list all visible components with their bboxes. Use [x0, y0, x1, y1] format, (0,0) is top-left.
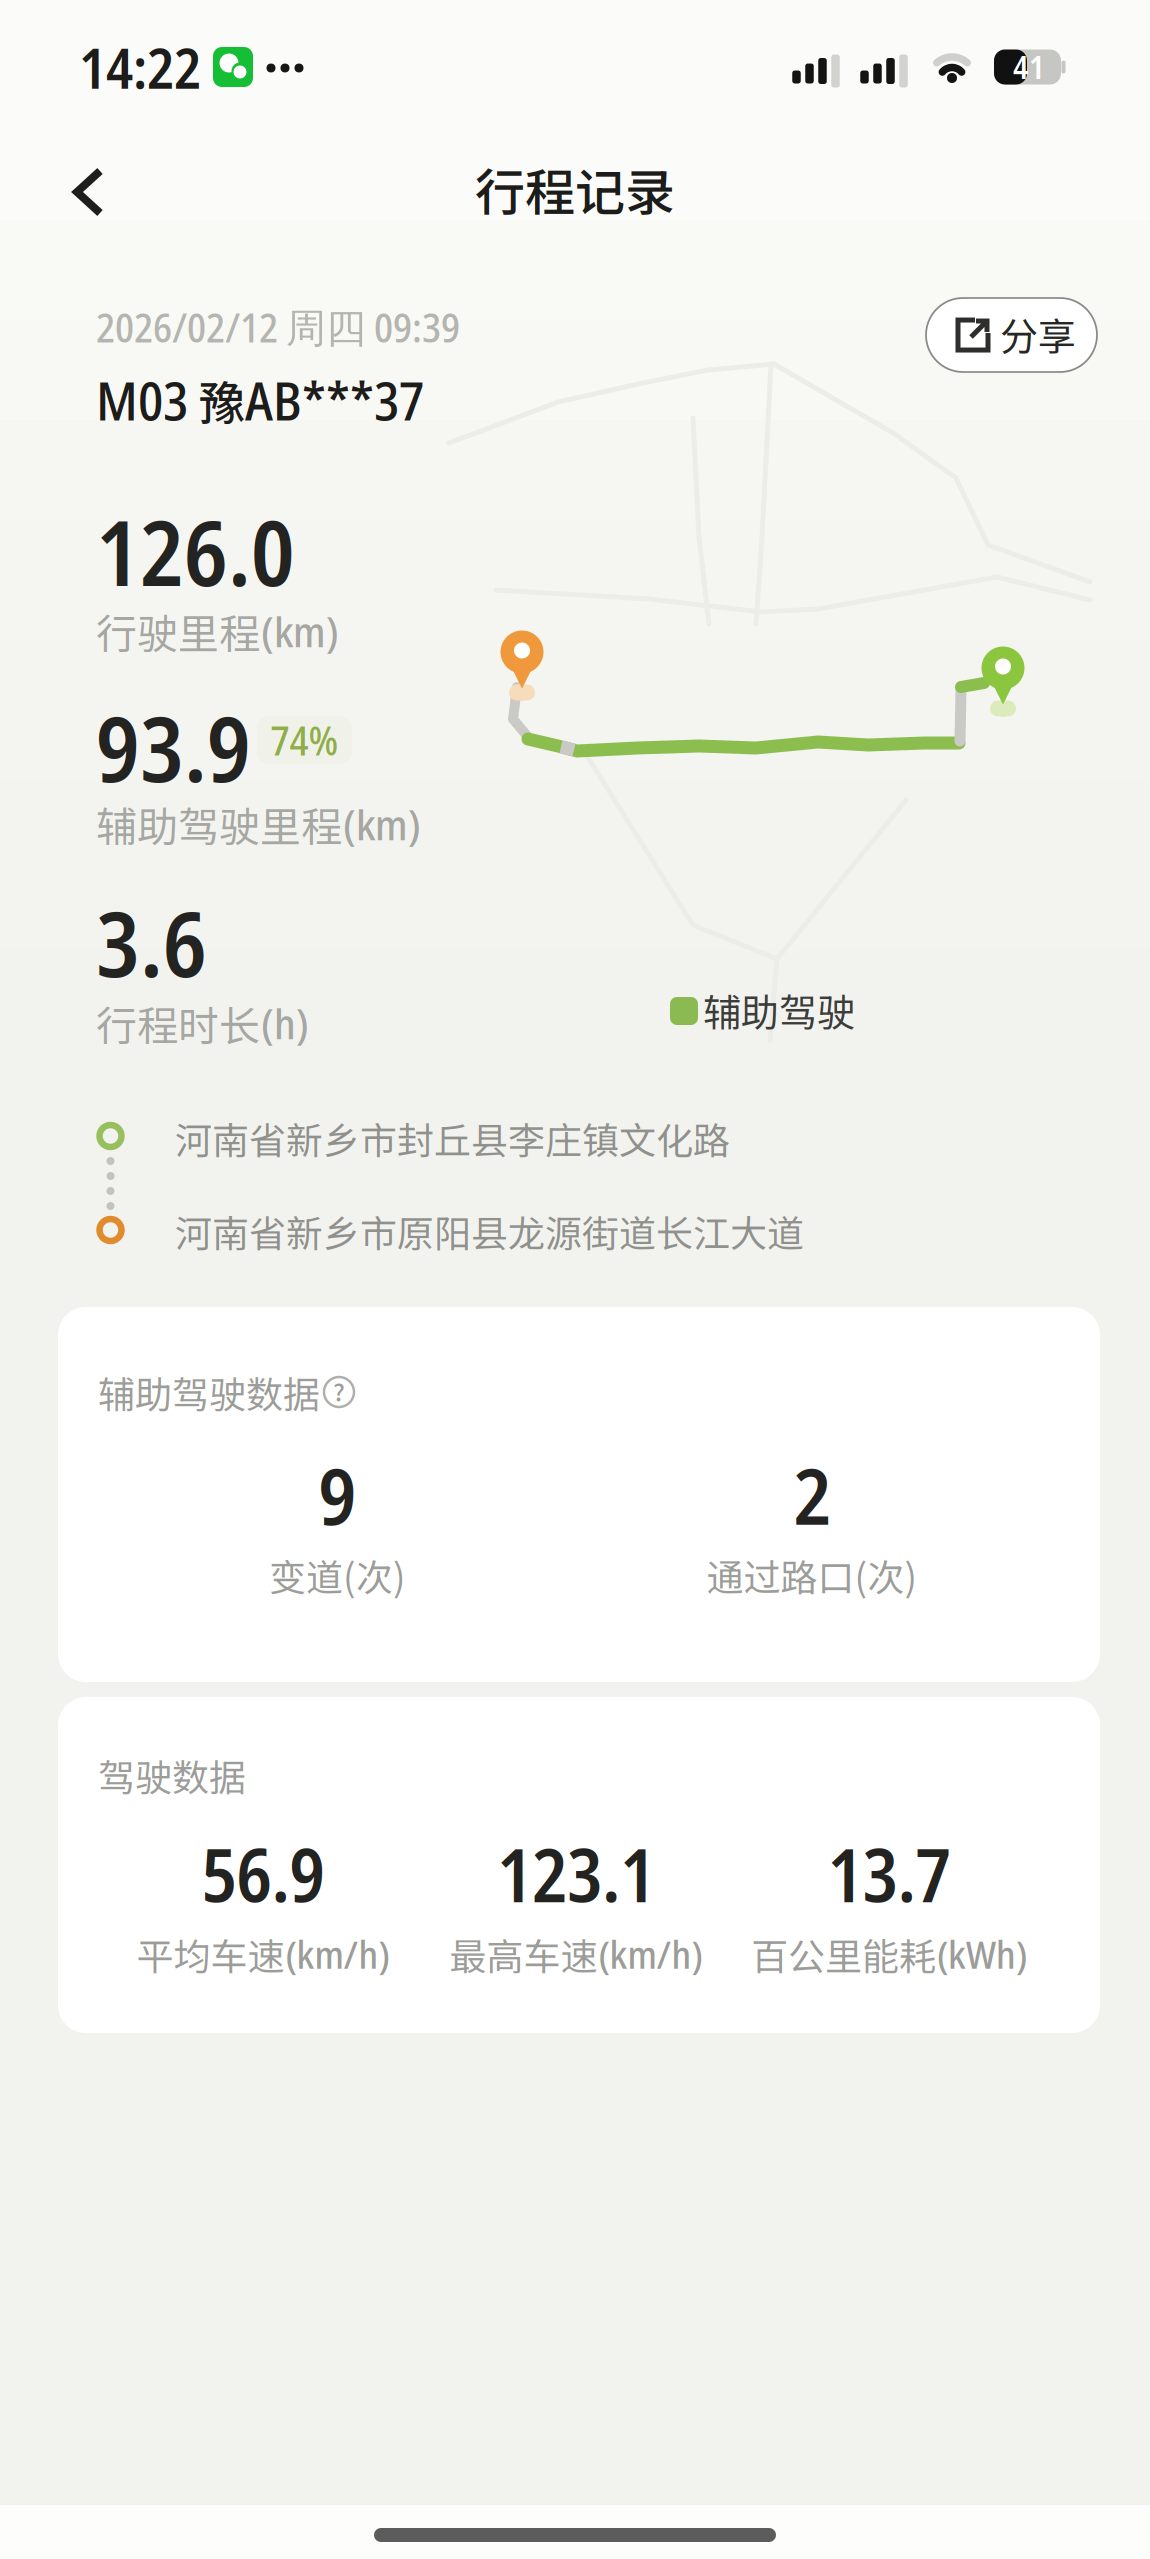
staticText: (h)	[261, 994, 309, 1052]
staticText: 93.9	[96, 686, 251, 808]
staticText: 3.6	[96, 881, 207, 1003]
staticText: 123.1	[497, 1824, 655, 1924]
staticText: (km)	[343, 795, 421, 853]
staticText: 百公里能耗	[751, 1927, 936, 1981]
staticText: 2026/02/12 周四 09:39	[96, 300, 460, 354]
staticText: 56.9	[201, 1824, 324, 1924]
button[interactable]: 分享	[926, 298, 1097, 372]
staticText: (km/h)	[598, 1928, 702, 1980]
staticText: 126.0	[96, 490, 295, 612]
staticText: 驾驶数据	[98, 1748, 246, 1802]
staticText: 豫	[199, 367, 245, 433]
staticText: M03	[96, 364, 199, 436]
staticText: 通过路口	[706, 1548, 854, 1602]
staticText: 13.7	[827, 1824, 950, 1924]
staticText: 74%	[270, 713, 338, 767]
staticText: 辅助驾驶里程	[96, 794, 342, 854]
staticText: (kWh)	[937, 1928, 1027, 1980]
staticText: 行程记录	[475, 153, 675, 225]
staticText: 41	[1013, 45, 1045, 88]
staticText: (次)	[854, 1548, 917, 1602]
staticText: 河南省新乡市原阳县龙源街道长江大道	[175, 1204, 804, 1258]
staticText: 9	[318, 1441, 356, 1548]
staticText: (km/h)	[285, 1928, 389, 1980]
staticText: 辅助驾驶数据	[98, 1365, 320, 1419]
staticText: 行驶里程	[96, 601, 260, 661]
staticText: (km)	[261, 602, 339, 660]
staticText: 2	[793, 1441, 831, 1548]
staticText: ?	[333, 1374, 345, 1408]
staticText: AB***37	[245, 364, 424, 436]
staticText: 最高车速	[449, 1927, 597, 1981]
staticText: 变道	[269, 1548, 343, 1602]
button[interactable]	[69, 166, 109, 218]
staticText: 辅助驾驶	[703, 982, 855, 1037]
button[interactable]: ?	[322, 1375, 356, 1409]
staticText: 分享	[1000, 306, 1076, 361]
staticText: 行程时长	[96, 993, 260, 1053]
staticText: 平均车速	[136, 1927, 284, 1981]
staticText: 14:22	[79, 29, 201, 105]
staticText: (次)	[343, 1548, 406, 1602]
staticText: 河南省新乡市封丘县李庄镇文化路	[175, 1111, 730, 1165]
